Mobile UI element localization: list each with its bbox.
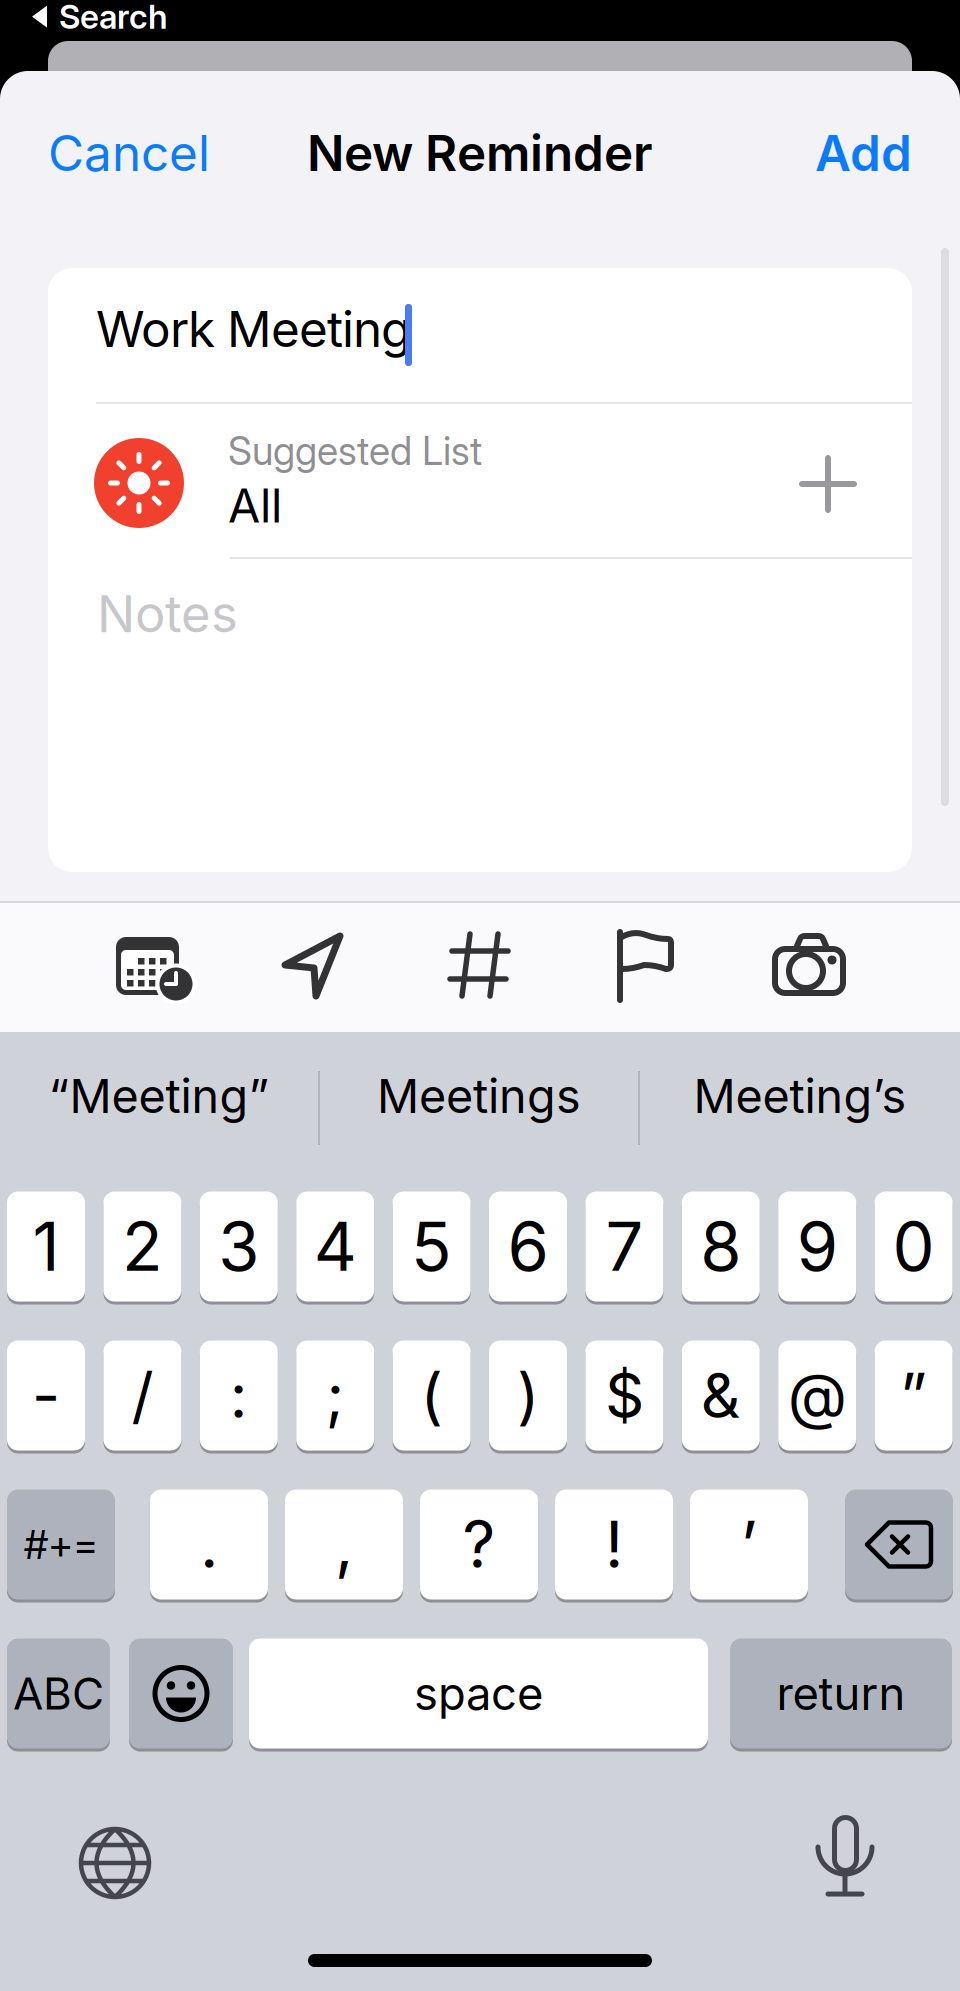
button[interactable]: ? — [420, 1488, 538, 1601]
staticText: #+= — [24, 1521, 98, 1568]
staticText: $ — [605, 1359, 644, 1432]
staticText: , — [335, 1507, 353, 1582]
staticText: Meetings — [377, 1068, 581, 1124]
button[interactable]: 4 — [296, 1190, 374, 1303]
button[interactable]: ABC — [7, 1637, 110, 1750]
button[interactable]: ” — [875, 1339, 953, 1452]
staticText: : — [230, 1359, 248, 1432]
staticText: All — [228, 478, 282, 533]
button[interactable]: ! — [555, 1488, 673, 1601]
staticText: Add — [815, 124, 912, 182]
button[interactable]: Add tag — [384, 903, 576, 1026]
staticText: 8 — [700, 1207, 741, 1286]
button[interactable]: 8 — [682, 1190, 760, 1303]
staticText: 6 — [507, 1207, 548, 1286]
staticText: ? — [462, 1507, 495, 1582]
button[interactable]: space — [249, 1637, 708, 1750]
button[interactable]: Emoji — [129, 1637, 233, 1750]
button[interactable]: , — [285, 1488, 403, 1601]
button[interactable]: ) — [489, 1339, 567, 1452]
staticText: Work Meeting — [96, 300, 411, 358]
staticText: ” — [900, 1359, 927, 1432]
staticText: ! — [605, 1507, 623, 1582]
button[interactable]: ( — [393, 1339, 471, 1452]
staticText: New Reminder — [307, 124, 653, 182]
staticText: ( — [421, 1359, 443, 1432]
button[interactable]: Add photo — [714, 903, 906, 1026]
button[interactable]: $ — [585, 1339, 663, 1452]
staticText: / — [131, 1359, 153, 1432]
staticText: Meeting’s — [693, 1068, 906, 1124]
staticText: 7 — [605, 1207, 643, 1286]
staticText: ) — [517, 1359, 539, 1432]
button[interactable]: #+= — [7, 1488, 115, 1601]
button[interactable]: Add location — [219, 903, 411, 1026]
button[interactable]: 5 — [393, 1190, 471, 1303]
staticText: 1 — [32, 1207, 59, 1286]
button[interactable]: 1 — [7, 1190, 85, 1303]
staticText: Suggested List — [228, 428, 482, 474]
staticText: ; — [326, 1359, 345, 1432]
button[interactable]: : — [200, 1339, 278, 1452]
staticText: - — [32, 1359, 60, 1432]
staticText: 9 — [797, 1207, 838, 1286]
button[interactable]: / — [103, 1339, 181, 1452]
staticText: space — [414, 1667, 543, 1720]
button[interactable]: & — [682, 1339, 760, 1452]
button[interactable]: . — [150, 1488, 268, 1601]
staticText: 3 — [218, 1207, 259, 1286]
button[interactable]: ’ — [690, 1488, 808, 1601]
button[interactable]: 7 — [585, 1190, 663, 1303]
staticText: “Meeting” — [48, 1068, 269, 1124]
staticText: 0 — [893, 1207, 935, 1286]
button[interactable]: Add date — [56, 903, 248, 1026]
button[interactable]: - — [7, 1339, 85, 1452]
staticText: 4 — [314, 1207, 357, 1286]
button[interactable]: Cancel — [48, 124, 210, 182]
button[interactable]: Add — [815, 124, 912, 182]
button[interactable]: Back to Search — [30, 0, 168, 36]
staticText: ’ — [740, 1507, 757, 1582]
button[interactable]: ; — [296, 1339, 374, 1452]
staticText: ABC — [13, 1667, 104, 1719]
staticText: 2 — [122, 1207, 163, 1286]
button[interactable]: 2 — [103, 1190, 181, 1303]
staticText: Cancel — [48, 124, 210, 182]
staticText: Notes — [97, 584, 238, 644]
button[interactable]: 6 — [489, 1190, 567, 1303]
button[interactable]: 0 — [875, 1190, 953, 1303]
button[interactable]: return — [730, 1637, 952, 1750]
button[interactable]: @ — [778, 1339, 856, 1452]
button[interactable]: Meetings — [320, 1026, 638, 1190]
button[interactable]: Add list — [799, 455, 857, 513]
staticText: Search — [59, 0, 168, 36]
button[interactable]: Flag — [549, 903, 741, 1026]
button[interactable]: Switch keyboard — [78, 1826, 153, 1901]
button[interactable]: 3 — [200, 1190, 278, 1303]
staticText: . — [200, 1507, 218, 1582]
staticText: 5 — [411, 1207, 452, 1286]
button[interactable]: 9 — [778, 1190, 856, 1303]
staticText: return — [776, 1667, 905, 1720]
button[interactable]: Dictate — [808, 1813, 883, 1901]
staticText: @ — [788, 1359, 847, 1432]
button[interactable]: Suggested List — [94, 428, 754, 533]
button[interactable]: “Meeting” — [0, 1026, 318, 1190]
staticText: & — [701, 1359, 741, 1432]
button[interactable]: Delete — [845, 1488, 953, 1601]
button[interactable]: Meeting’s — [640, 1026, 960, 1190]
